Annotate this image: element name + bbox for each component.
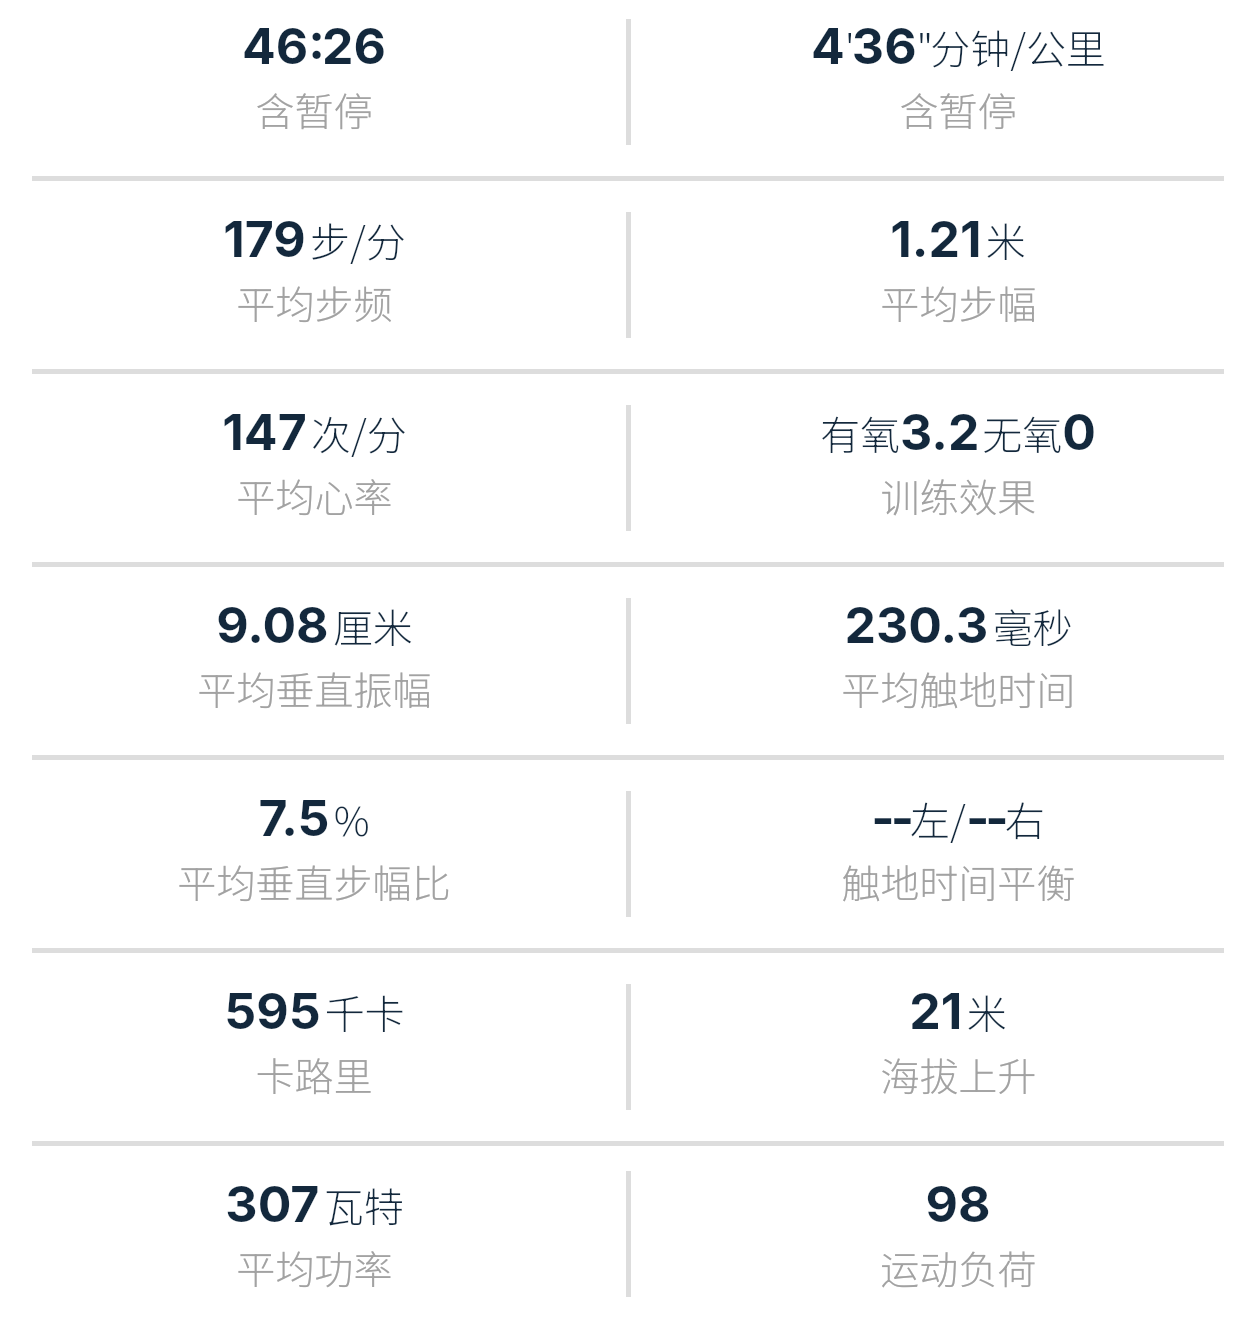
staticText: 运动负荷 [880, 1239, 1037, 1295]
staticText: 触地时间平衡 [841, 853, 1076, 909]
staticText: 卡路里 [255, 1046, 373, 1102]
button[interactable]: 7.5 % [0, 760, 628, 948]
button[interactable]: 98 [660, 1146, 1256, 1321]
staticText: 9.08 厘米 [216, 595, 413, 655]
staticText: 307 瓦特 [225, 1174, 404, 1234]
staticText: 平均步幅 [880, 274, 1037, 330]
staticText: 21 米 [909, 981, 1007, 1041]
staticText: 147 次/分 [222, 402, 407, 462]
staticText: 98 [925, 1174, 991, 1234]
button[interactable]: 147 次/分 [0, 374, 628, 562]
staticText: 7.5 % [258, 788, 370, 848]
button[interactable]: 1.21 米 [660, 181, 1256, 369]
staticText: 平均步频 [236, 274, 393, 330]
staticText: 595 千卡 [224, 981, 405, 1041]
staticText: 4'36"分钟/公里 [811, 16, 1106, 76]
staticText: --左/--右 [871, 788, 1045, 848]
staticText: 1.21 米 [890, 209, 1026, 269]
button[interactable]: 4'36"分钟/公里 [660, 0, 1256, 176]
staticText: 含暂停 [899, 81, 1017, 137]
button[interactable]: 179 步/分 [0, 181, 628, 369]
staticText: 平均心率 [236, 467, 393, 523]
button[interactable]: 21 米 [660, 953, 1256, 1141]
staticText: 179 步/分 [223, 209, 406, 269]
staticText: 平均垂直步幅比 [177, 853, 451, 909]
button[interactable]: 595 千卡 [0, 953, 628, 1141]
staticText: 230.3 毫秒 [844, 595, 1073, 655]
staticText: 平均功率 [236, 1239, 393, 1295]
staticText: 46:26 [242, 16, 386, 76]
staticText: 有氧3.2 无氧0 [820, 402, 1096, 462]
staticText: 训练效果 [880, 467, 1037, 523]
button[interactable]: 46:26 [0, 0, 628, 176]
staticText: 含暂停 [255, 81, 373, 137]
button[interactable]: 9.08 厘米 [0, 567, 628, 755]
button[interactable]: 230.3 毫秒 [660, 567, 1256, 755]
button[interactable]: --左/--右 [660, 760, 1256, 948]
button[interactable]: 307 瓦特 [0, 1146, 628, 1321]
staticText: 平均触地时间 [841, 660, 1076, 716]
staticText: 海拔上升 [880, 1046, 1037, 1102]
staticText: 平均垂直振幅 [197, 660, 432, 716]
button[interactable]: 有氧3.2 无氧0 [660, 374, 1256, 562]
